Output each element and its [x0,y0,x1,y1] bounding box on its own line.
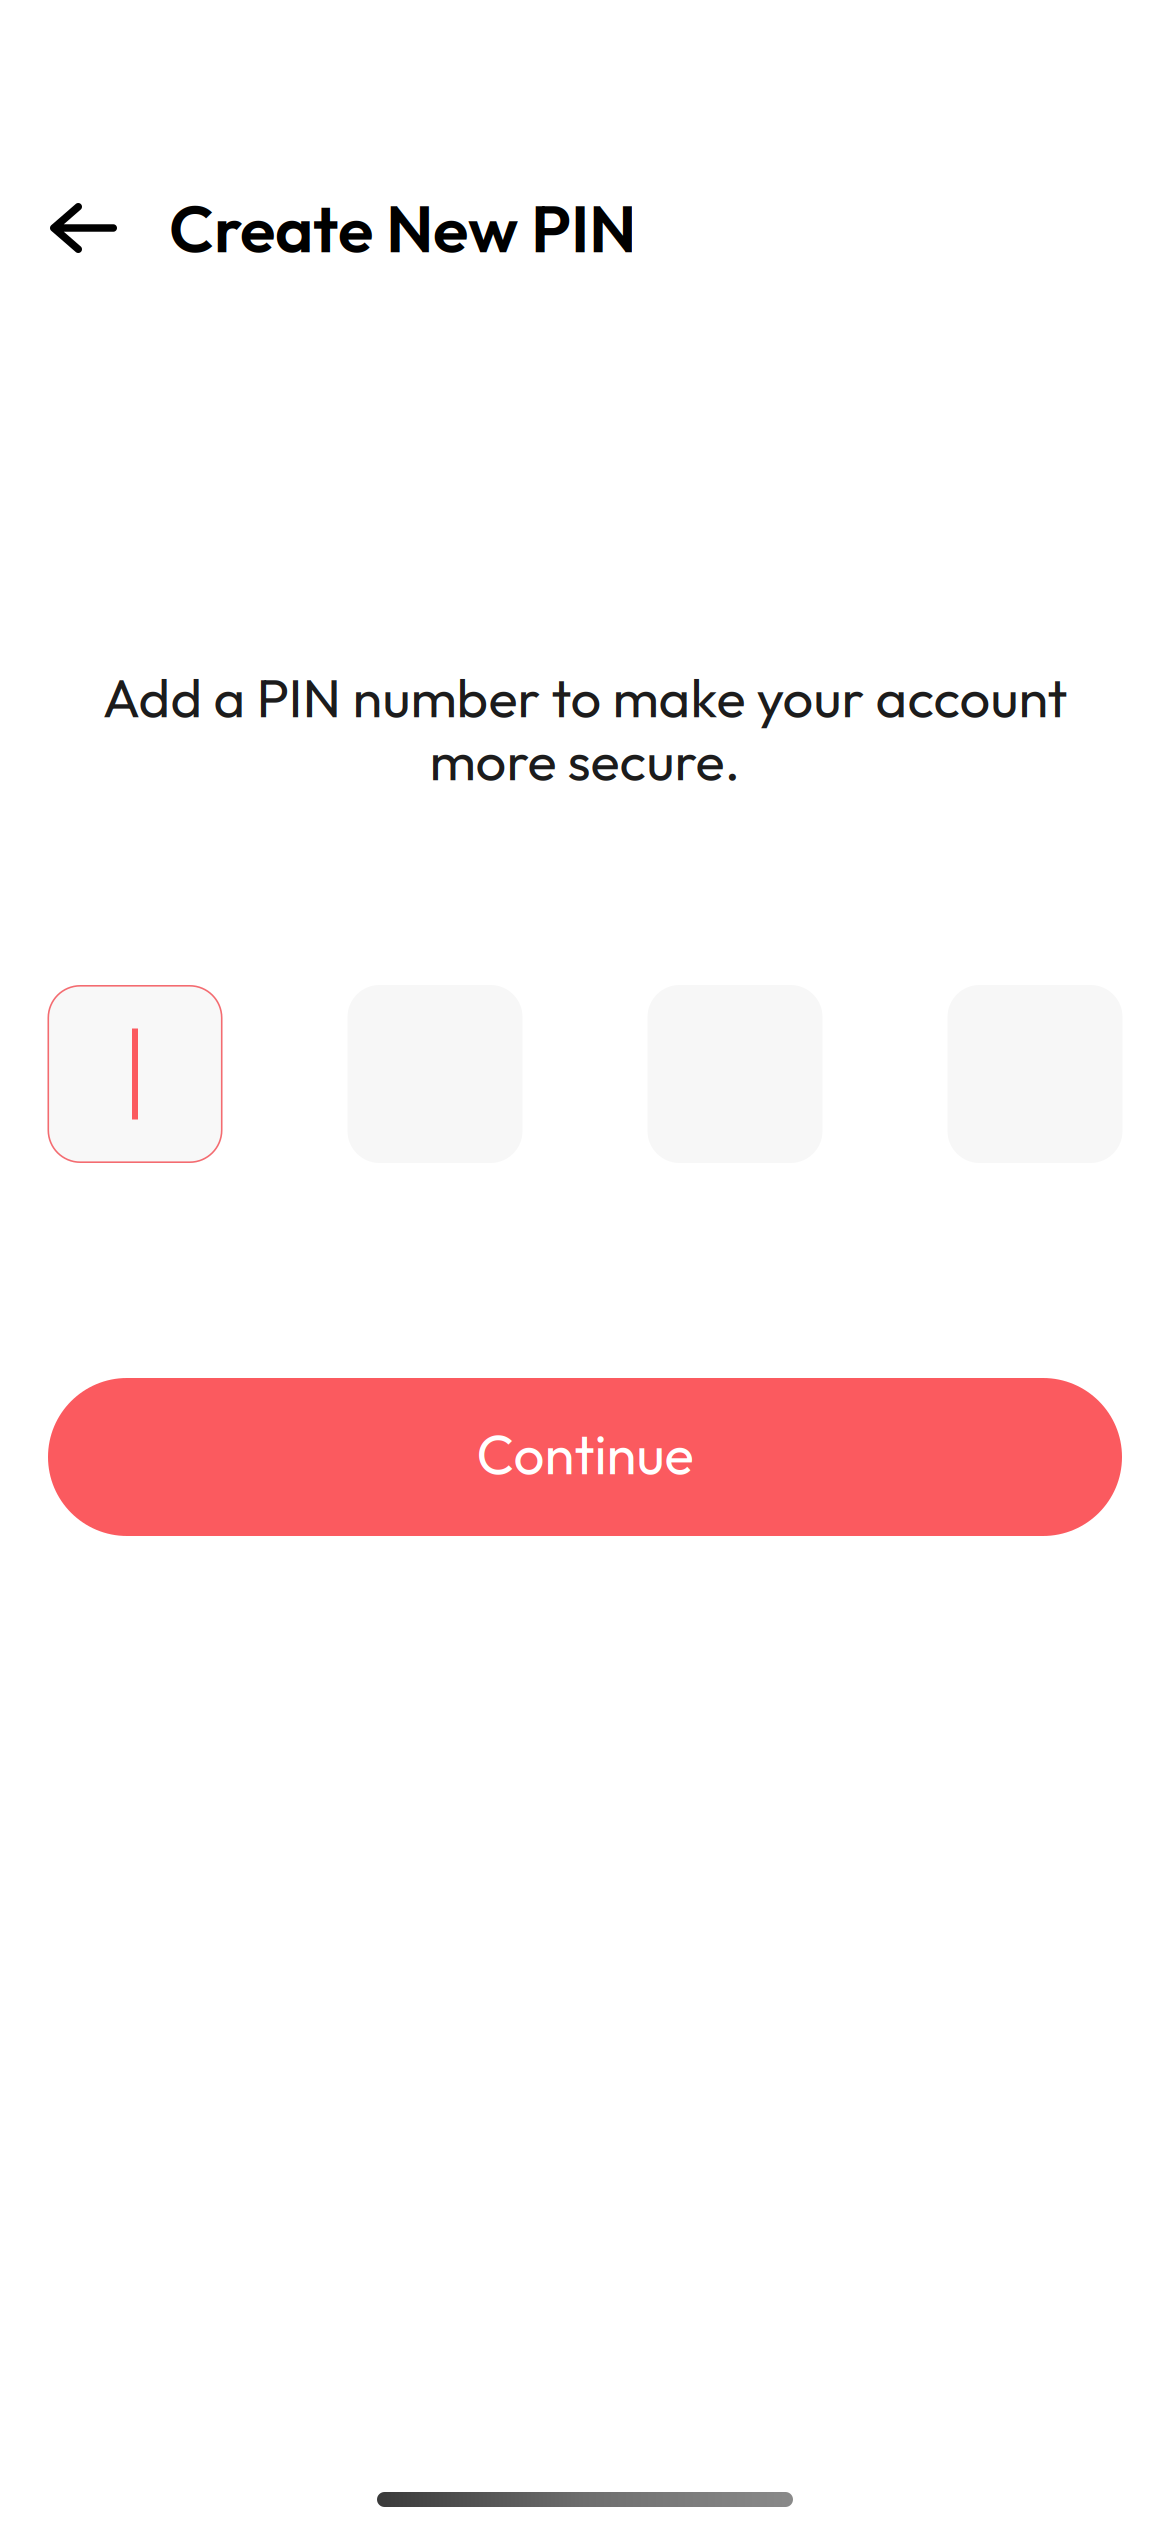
staticText: Continue [476,1420,693,1488]
staticText: Add a PIN number to make your account [102,663,1067,731]
button[interactable]: Continue [48,1378,1122,1536]
button[interactable]: Back [0,180,169,276]
staticText: Create New PIN [169,187,636,269]
button[interactable]: PIN digit 1 [47,985,222,1163]
staticText: more secure. [429,726,740,794]
